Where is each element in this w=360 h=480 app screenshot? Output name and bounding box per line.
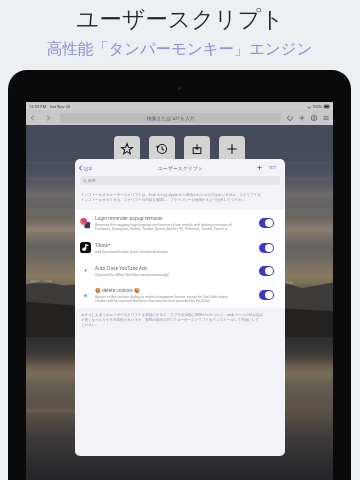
staticText: 設定 <box>84 166 93 171</box>
staticText: Sat Nov 26 <box>50 104 71 109</box>
button[interactable]: 🍪 delete cookies 🍪 <box>80 282 274 308</box>
button[interactable]: Auto Close YouTube Ads <box>80 259 274 282</box>
button[interactable]: Tabs <box>311 115 317 121</box>
button[interactable]: Enable Login reminder popup remover <box>259 218 274 228</box>
staticText: あまりにも多くのユーザースクリプトを有効にすると、アプリの起動に時間がかかったり… <box>81 312 264 327</box>
button[interactable]: Back <box>30 114 35 122</box>
button[interactable]: 検索または url を入力 <box>60 113 281 123</box>
staticText: Auto Close YouTube Ads <box>95 265 147 271</box>
button[interactable]: 完了 <box>269 165 278 170</box>
button[interactable]: Menu <box>323 115 329 121</box>
staticText: ユーザースクリプト <box>158 165 203 171</box>
button[interactable]: Forward <box>46 114 51 122</box>
staticText: 🍪 delete cookies 🍪 <box>95 287 140 293</box>
staticText: 高性能「タンパーモンキー」エンジン <box>47 39 313 58</box>
staticText: 検索 <box>88 178 96 183</box>
button[interactable]: Login reminder popup remover <box>80 210 274 236</box>
button[interactable]: 検索 <box>80 176 280 185</box>
button[interactable]: Enable 🍪 delete cookies 🍪 <box>259 290 274 300</box>
button[interactable]: Enable Tiktok+ <box>259 243 274 253</box>
staticText: 検索または url を入力 <box>147 115 195 122</box>
staticText: Tiktok+ <box>95 242 111 248</box>
staticText: Close and/or Mute YouTube ads automatica… <box>95 272 169 277</box>
staticText: Removes the nagging login popups and ban… <box>95 222 232 231</box>
button[interactable]: History <box>149 136 175 162</box>
button[interactable]: Add script <box>257 165 262 170</box>
button[interactable]: 設定 <box>79 165 93 171</box>
button[interactable]: Reload <box>287 115 293 121</box>
staticText: インストールするユーザースクリプトは、Tesk または Apple から提供され… <box>81 192 261 202</box>
staticText: ユーザースクリプト <box>76 5 284 34</box>
staticText: Agrees to the cookies dialog to make it … <box>95 294 228 303</box>
staticText: add download button & see thumbnail butt… <box>95 249 169 254</box>
staticText: Login reminder popup remover <box>95 215 163 221</box>
button[interactable]: New tab <box>299 115 305 121</box>
staticText: 12:59 PM <box>29 104 47 109</box>
staticText: 100% <box>312 104 323 109</box>
button[interactable]: Tiktok+ <box>80 236 274 259</box>
button[interactable]: Favorites <box>114 136 140 162</box>
button[interactable]: Reading list <box>184 136 210 162</box>
button[interactable]: Enable Auto Close YouTube Ads <box>259 266 274 276</box>
button[interactable]: New tab <box>219 136 245 162</box>
